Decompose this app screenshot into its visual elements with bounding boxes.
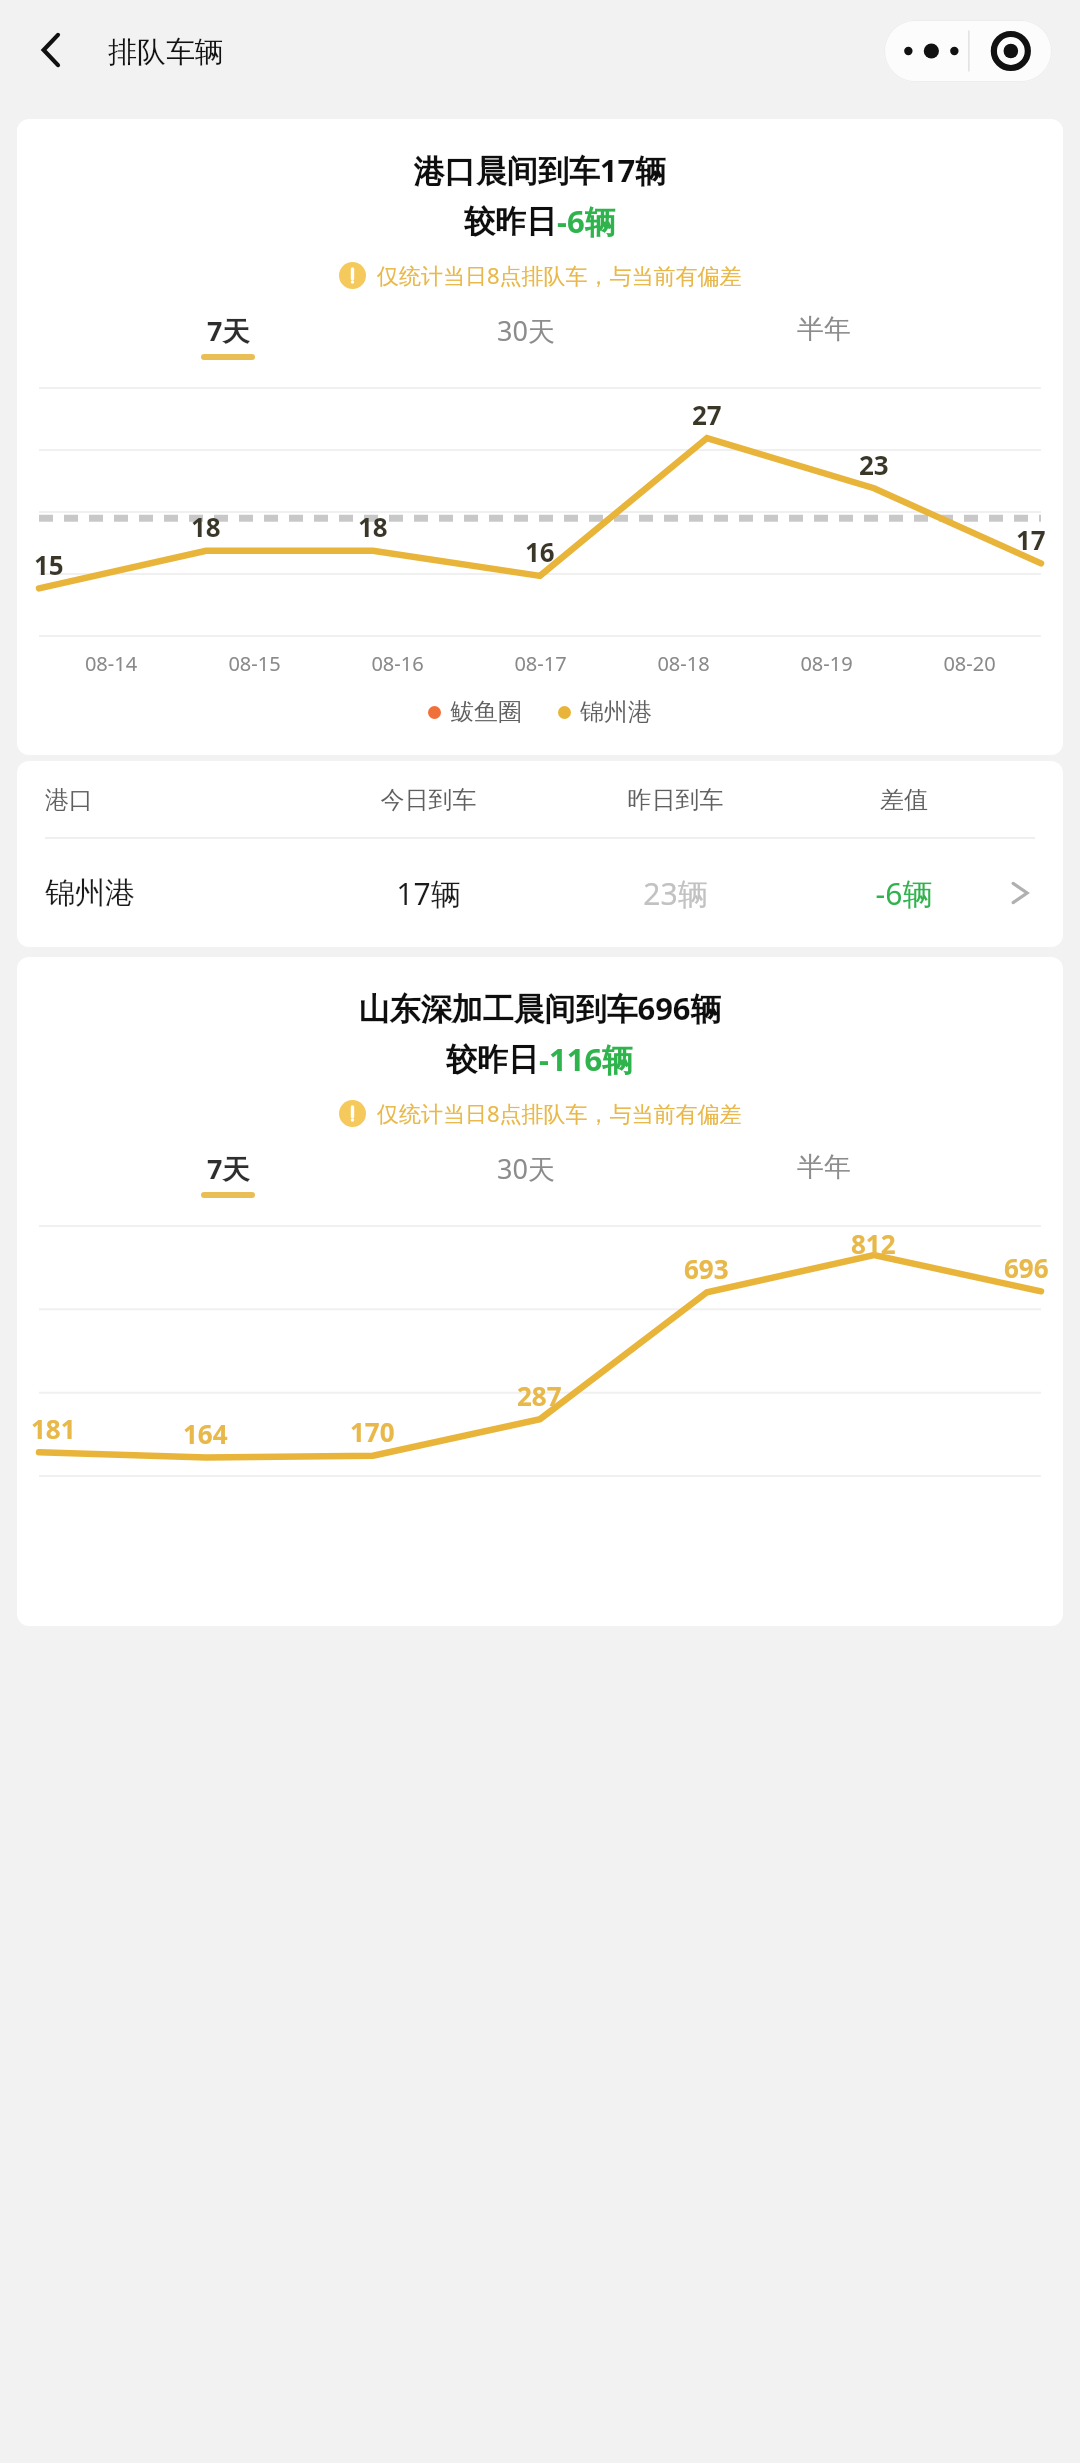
- staticText: 17辆: [305, 873, 552, 914]
- button[interactable]: 7天: [79, 1150, 377, 1198]
- staticText: 鲅鱼圈: [450, 697, 522, 727]
- staticText: 17: [1016, 522, 1046, 557]
- button[interactable]: Close mini program: [968, 20, 1052, 82]
- staticText: 锦州港: [580, 697, 652, 727]
- staticText: 693: [684, 1251, 729, 1286]
- staticText: 仅统计当日8点排队车，与当前有偏差: [377, 260, 742, 290]
- button[interactable]: 30天: [377, 1150, 675, 1198]
- staticText: 08-18: [612, 650, 755, 677]
- staticText: 696: [1004, 1250, 1049, 1285]
- staticText: 港口: [45, 785, 305, 815]
- staticText: 港口晨间到车17辆: [37, 149, 1043, 191]
- staticText: 15: [34, 547, 64, 582]
- staticText: 170: [350, 1414, 395, 1449]
- staticText: 30天: [497, 312, 555, 349]
- staticText: 18: [191, 509, 221, 544]
- staticText: 昨日到车: [552, 785, 799, 815]
- staticText: 差值: [799, 785, 1009, 815]
- staticText: 287: [517, 1378, 562, 1413]
- staticText: 23辆: [552, 873, 799, 914]
- staticText: 23: [859, 447, 889, 482]
- staticText: 08-15: [183, 650, 326, 677]
- staticText: 锦州港: [45, 874, 305, 912]
- staticText: 较昨日: [464, 202, 557, 241]
- staticText: 164: [183, 1416, 228, 1451]
- staticText: 812: [851, 1226, 896, 1261]
- staticText: 08-14: [39, 650, 183, 677]
- button[interactable]: Back: [22, 22, 78, 78]
- staticText: 7天: [207, 1150, 250, 1187]
- staticText: 仅统计当日8点排队车，与当前有偏差: [377, 1098, 742, 1128]
- staticText: 半年: [797, 1150, 851, 1184]
- staticText: 排队车辆: [108, 34, 224, 71]
- staticText: 08-20: [898, 650, 1041, 677]
- staticText: -6辆: [799, 873, 1009, 914]
- staticText: 半年: [797, 312, 851, 346]
- staticText: 山东深加工晨间到车696辆: [37, 987, 1043, 1029]
- staticText: -6辆: [557, 200, 616, 242]
- staticText: 08-16: [326, 650, 469, 677]
- button[interactable]: 山东深加工晨间到车696辆: [17, 957, 1063, 1626]
- staticText: 30天: [497, 1150, 555, 1187]
- button[interactable]: More options: [884, 20, 968, 82]
- staticText: 7天: [207, 312, 250, 349]
- staticText: 今日到车: [305, 785, 552, 815]
- button[interactable]: 半年: [675, 312, 973, 357]
- staticText: 08-19: [755, 650, 898, 677]
- button[interactable]: 港口晨间到车17辆: [17, 119, 1063, 755]
- staticText: 16: [525, 534, 555, 569]
- button[interactable]: 7天: [79, 312, 377, 360]
- staticText: 较昨日: [446, 1040, 539, 1079]
- staticText: 27: [692, 397, 722, 432]
- button[interactable]: 30天: [377, 312, 675, 360]
- staticText: 08-17: [469, 650, 612, 677]
- button[interactable]: 锦州港: [17, 839, 1063, 947]
- staticText: -116辆: [539, 1038, 634, 1080]
- button[interactable]: 半年: [675, 1150, 973, 1195]
- staticText: 181: [31, 1411, 76, 1446]
- staticText: 18: [358, 509, 388, 544]
